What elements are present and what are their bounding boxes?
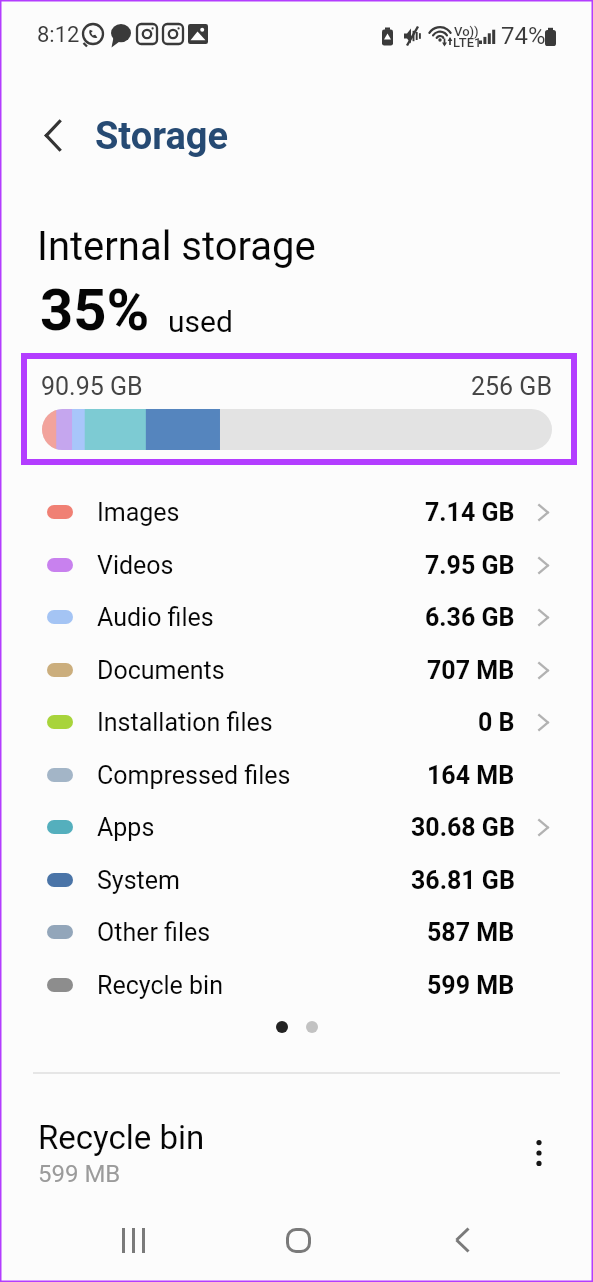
- button[interactable]: More options: [515, 1129, 563, 1177]
- staticText: Installation files: [97, 708, 273, 737]
- staticText: 707 MB: [427, 656, 515, 685]
- staticText: 8:12: [37, 22, 80, 48]
- staticText: Videos: [97, 551, 174, 580]
- staticText: LTE1: [453, 35, 482, 50]
- staticText: used: [168, 304, 233, 339]
- staticText: Images: [97, 498, 180, 527]
- staticText: 7.95 GB: [425, 551, 515, 580]
- button[interactable]: Audio files: [0, 591, 593, 643]
- staticText: 90.95 GB: [41, 372, 143, 401]
- staticText: 587 MB: [427, 918, 515, 947]
- staticText: 7.14 GB: [425, 498, 515, 527]
- staticText: 36.81 GB: [411, 866, 515, 895]
- staticText: Vo)): [454, 24, 479, 39]
- button[interactable]: Back: [422, 1200, 502, 1280]
- button[interactable]: Page 2: [306, 1021, 318, 1033]
- staticText: Internal storage: [37, 223, 316, 270]
- staticText: 35%: [40, 276, 150, 344]
- button[interactable]: Documents: [0, 644, 593, 696]
- staticText: 0 B: [478, 708, 515, 737]
- staticText: Other files: [97, 918, 211, 947]
- button[interactable]: System: [0, 854, 593, 906]
- staticText: Apps: [97, 813, 155, 842]
- button[interactable]: Recycle bin: [0, 1108, 593, 1198]
- button[interactable]: Compressed files: [0, 749, 593, 801]
- button[interactable]: Recycle bin: [0, 959, 593, 1011]
- button[interactable]: Recents: [93, 1200, 173, 1280]
- staticText: Audio files: [97, 603, 214, 632]
- staticText: System: [97, 866, 180, 895]
- button[interactable]: Other files: [0, 906, 593, 958]
- button[interactable]: Home: [258, 1200, 338, 1280]
- button[interactable]: Installation files: [0, 696, 593, 748]
- button[interactable]: Back: [25, 107, 81, 163]
- button[interactable]: Images: [0, 486, 593, 538]
- staticText: Recycle bin: [97, 971, 223, 1000]
- staticText: 164 MB: [427, 761, 515, 790]
- button[interactable]: Apps: [0, 801, 593, 853]
- staticText: 74%: [501, 22, 546, 50]
- staticText: Compressed files: [97, 761, 291, 790]
- button[interactable]: Page 1: [276, 1021, 288, 1033]
- staticText: 30.68 GB: [411, 813, 515, 842]
- staticText: 599 MB: [427, 971, 515, 1000]
- staticText: 6.36 GB: [425, 603, 515, 632]
- staticText: 599 MB: [38, 1160, 121, 1188]
- button[interactable]: Storage: [95, 114, 229, 159]
- staticText: Recycle bin: [38, 1118, 205, 1157]
- staticText: Documents: [97, 656, 225, 685]
- staticText: 256 GB: [471, 372, 552, 401]
- button[interactable]: Videos: [0, 539, 593, 591]
